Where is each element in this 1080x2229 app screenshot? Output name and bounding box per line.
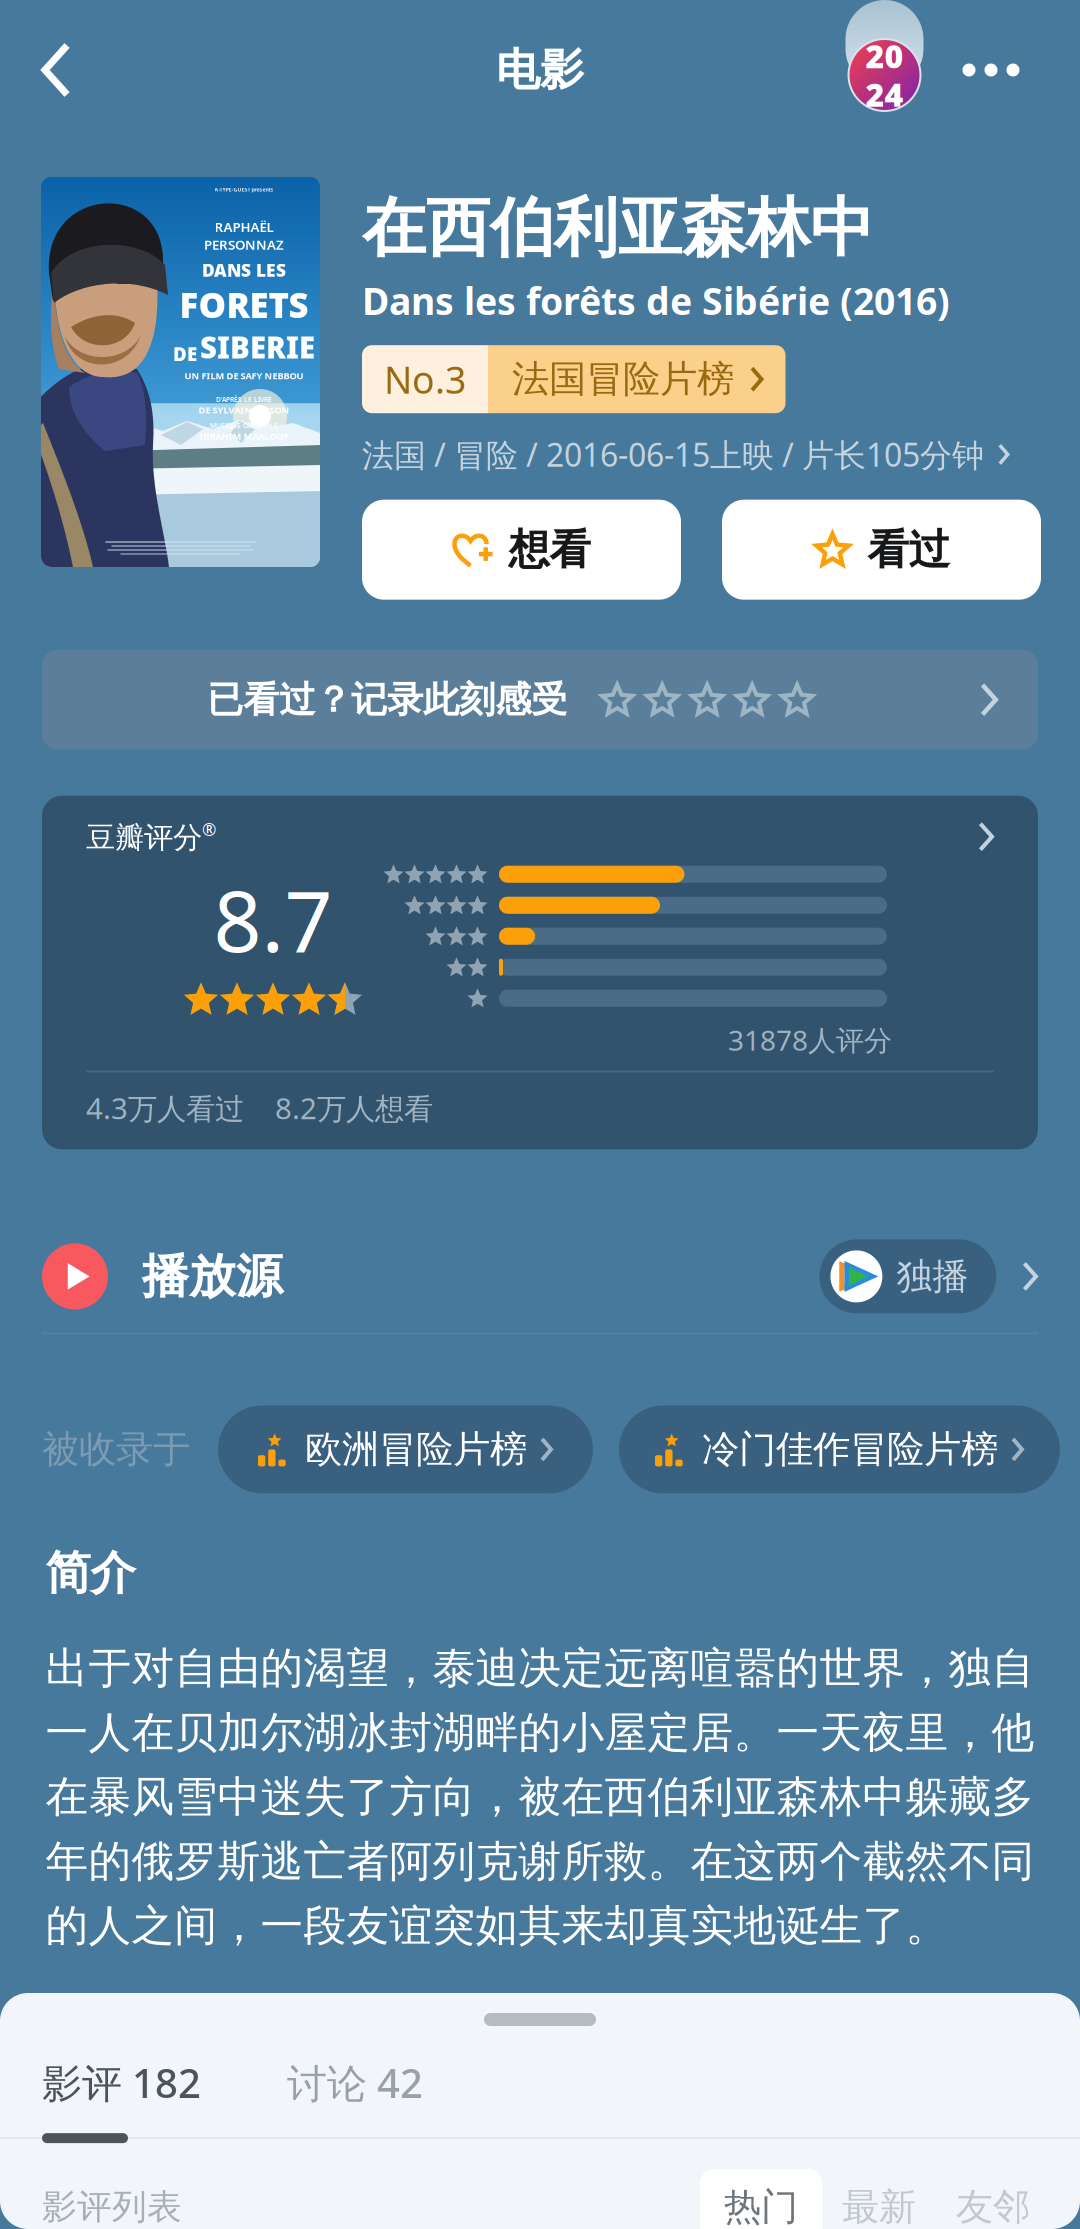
staticText: 欧洲冒险片榜 bbox=[305, 1426, 527, 1472]
staticText: 想看 bbox=[508, 524, 590, 575]
staticText: UN FILM DE SAFY NEBBOU bbox=[184, 369, 303, 382]
staticText: 热门 bbox=[724, 2184, 798, 2229]
staticText: 4.3万人看过 bbox=[86, 1088, 244, 1127]
staticText: PERSONNAZ bbox=[204, 236, 284, 253]
staticText: 影评列表 bbox=[42, 2186, 182, 2228]
staticText: 在西伯利亚森林中 bbox=[362, 189, 874, 268]
staticText: 冷门佳作冒险片榜 bbox=[702, 1426, 998, 1472]
staticText: 简介 bbox=[45, 1545, 135, 1601]
staticText: 8.2万人想看 bbox=[275, 1088, 433, 1127]
staticText: 法国冒险片榜 bbox=[512, 356, 734, 402]
staticText: A-TYPE-GUEST presents bbox=[214, 186, 273, 193]
button[interactable]: 想看 bbox=[362, 500, 681, 600]
staticText: 出于对自由的渴望，泰迪决定远离喧嚣的世界，独自一人在贝加尔湖冰封湖畔的小屋定居。… bbox=[45, 1642, 1034, 1952]
staticText: 影评 182 bbox=[42, 2056, 201, 2109]
staticText: IBRAHIM MAALOUF bbox=[199, 430, 288, 442]
button[interactable]: 返回 bbox=[0, 0, 112, 140]
button[interactable]: 欧洲冒险片榜 bbox=[218, 1405, 593, 1493]
staticText: 友邻 bbox=[956, 2184, 1030, 2229]
button[interactable]: 讨论 42 bbox=[287, 2056, 423, 2109]
staticText: 最新 bbox=[842, 2184, 916, 2229]
staticText: 已看过？记录此刻感受 bbox=[207, 678, 567, 722]
button[interactable]: 看过 bbox=[722, 500, 1041, 600]
staticText: 8.7 bbox=[213, 864, 332, 975]
staticText: RAPHAËL bbox=[214, 218, 273, 236]
staticText: No.3 bbox=[384, 354, 466, 404]
button[interactable]: 更多 bbox=[932, 0, 1050, 140]
staticText: 电影 bbox=[496, 43, 584, 97]
button[interactable]: No.3 bbox=[362, 345, 785, 413]
staticText: 31878人评分 bbox=[728, 1021, 892, 1058]
staticText: 被收录于 bbox=[42, 1426, 190, 1472]
staticText: 法国 / 冒险 / 2016-06-15上映 / 片长105分钟 bbox=[362, 433, 984, 476]
staticText: 20 bbox=[865, 34, 903, 77]
staticText: 豆瓣评分 bbox=[86, 820, 202, 856]
staticText: FORETS bbox=[179, 281, 308, 327]
staticText: 独播 bbox=[896, 1254, 968, 1298]
button[interactable]: 友邻 bbox=[936, 2169, 1050, 2229]
button[interactable]: 热门 bbox=[700, 2169, 822, 2229]
staticText: DANS LES bbox=[202, 258, 286, 281]
button[interactable]: 已看过？记录此刻感受 bbox=[0, 650, 1080, 750]
button[interactable]: 2024 年度榜单 bbox=[817, 0, 912, 140]
staticText: 播放源 bbox=[142, 1248, 283, 1305]
button[interactable]: 法国 / 冒险 / 2016-06-15上映 / 片长105分钟 bbox=[362, 433, 1009, 476]
staticText: D'APRÈS LE LIVRE bbox=[216, 395, 272, 404]
staticText: 24 bbox=[865, 73, 903, 115]
staticText: SIBERIE bbox=[200, 327, 315, 366]
staticText: DE bbox=[173, 342, 197, 366]
staticText: 讨论 42 bbox=[287, 2056, 423, 2109]
button[interactable]: 最新 bbox=[822, 2169, 936, 2229]
staticText: DE SYLVAIN TESSON bbox=[198, 404, 289, 416]
staticText: ® bbox=[202, 818, 216, 841]
button[interactable]: 冷门佳作冒险片榜 bbox=[619, 1405, 1060, 1493]
button[interactable]: 播放源 bbox=[0, 1220, 1080, 1332]
button[interactable]: 豆瓣评分 bbox=[42, 796, 1038, 1149]
staticText: Dans les forêts de Sibérie (2016) bbox=[362, 276, 950, 325]
staticText: MUSIQUE ORIGINALE bbox=[210, 421, 278, 430]
button[interactable]: 影评 182 bbox=[42, 2056, 201, 2109]
staticText: 看过 bbox=[867, 524, 949, 575]
